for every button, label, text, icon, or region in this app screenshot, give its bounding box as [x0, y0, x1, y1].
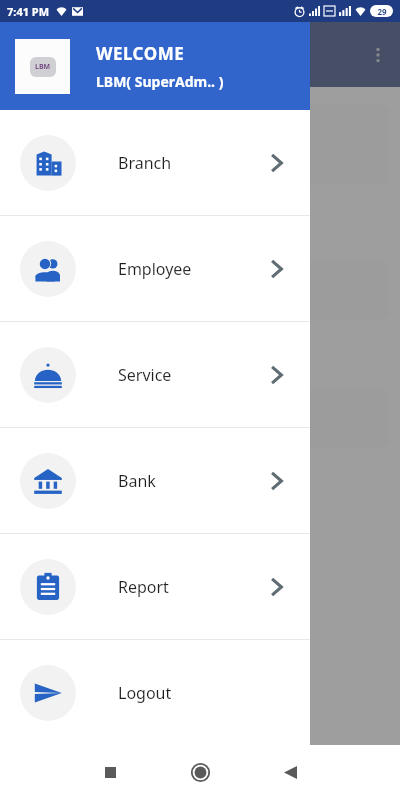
- button[interactable]: Logout: [0, 640, 310, 745]
- button[interactable]: Back: [262, 745, 318, 800]
- button[interactable]: Bank: [0, 428, 310, 533]
- staticText: LBM( SuperAdm.. ): [96, 72, 224, 91]
- staticText: Branch: [118, 152, 172, 174]
- staticText: Bank: [118, 470, 156, 492]
- staticText: Logout: [118, 682, 172, 704]
- staticText: Service: [118, 364, 172, 386]
- button[interactable]: Home: [172, 745, 228, 800]
- staticText: Employee: [118, 258, 192, 280]
- button[interactable]: Employee: [0, 216, 310, 321]
- button[interactable]: Report: [0, 534, 310, 639]
- staticText: LBM: [35, 62, 51, 72]
- button[interactable]: More options: [356, 33, 400, 77]
- staticText: WELCOME: [96, 42, 185, 65]
- button[interactable]: Recent apps: [82, 745, 138, 800]
- button[interactable]: Service: [0, 322, 310, 427]
- button[interactable]: Branch: [0, 110, 310, 215]
- staticText: 7:41 PM: [7, 4, 50, 19]
- staticText: Report: [118, 576, 169, 598]
- staticText: 29: [377, 6, 387, 17]
